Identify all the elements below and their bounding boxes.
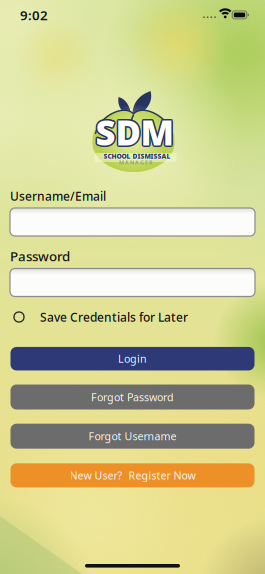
button[interactable]: Forgot Password: [10, 384, 254, 409]
staticText: SDM: [94, 108, 173, 154]
staticText: SCHOOL DISMISSAL: [103, 153, 170, 161]
staticText: SDM: [97, 109, 176, 155]
staticText: Save Credentials for Later: [40, 309, 188, 325]
button[interactable]: New User? Register Now: [10, 463, 254, 487]
staticText: SDM: [94, 109, 173, 155]
button[interactable]: Username/Email: [10, 208, 255, 236]
staticText: SDM: [95, 109, 174, 155]
staticText: SCHOOL DISMISSAL: [104, 152, 171, 161]
staticText: New User? Register Now: [69, 468, 195, 482]
staticText: Login: [118, 352, 147, 366]
staticText: SCHOOL DISMISSAL: [103, 152, 170, 161]
staticText: SDM: [95, 107, 174, 153]
staticText: Forgot Password: [91, 390, 174, 404]
staticText: 9:02: [20, 6, 48, 24]
button[interactable]: Forgot Username: [10, 424, 254, 449]
staticText: M A N A G E R: [119, 159, 152, 166]
button[interactable]: Password: [10, 268, 255, 296]
button[interactable]: Save Credentials for Later: [14, 309, 188, 325]
staticText: SDM: [95, 110, 174, 156]
staticText: SCHOOL DISMISSAL: [103, 152, 170, 161]
staticText: SCHOOL DISMISSAL: [103, 151, 170, 160]
button[interactable]: Login: [10, 347, 254, 370]
staticText: Username/Email: [10, 188, 106, 204]
staticText: SDM: [97, 110, 176, 156]
staticText: Forgot Username: [88, 429, 176, 443]
staticText: SDM: [97, 108, 176, 154]
staticText: SDM: [94, 110, 173, 156]
staticText: Password: [10, 247, 70, 265]
